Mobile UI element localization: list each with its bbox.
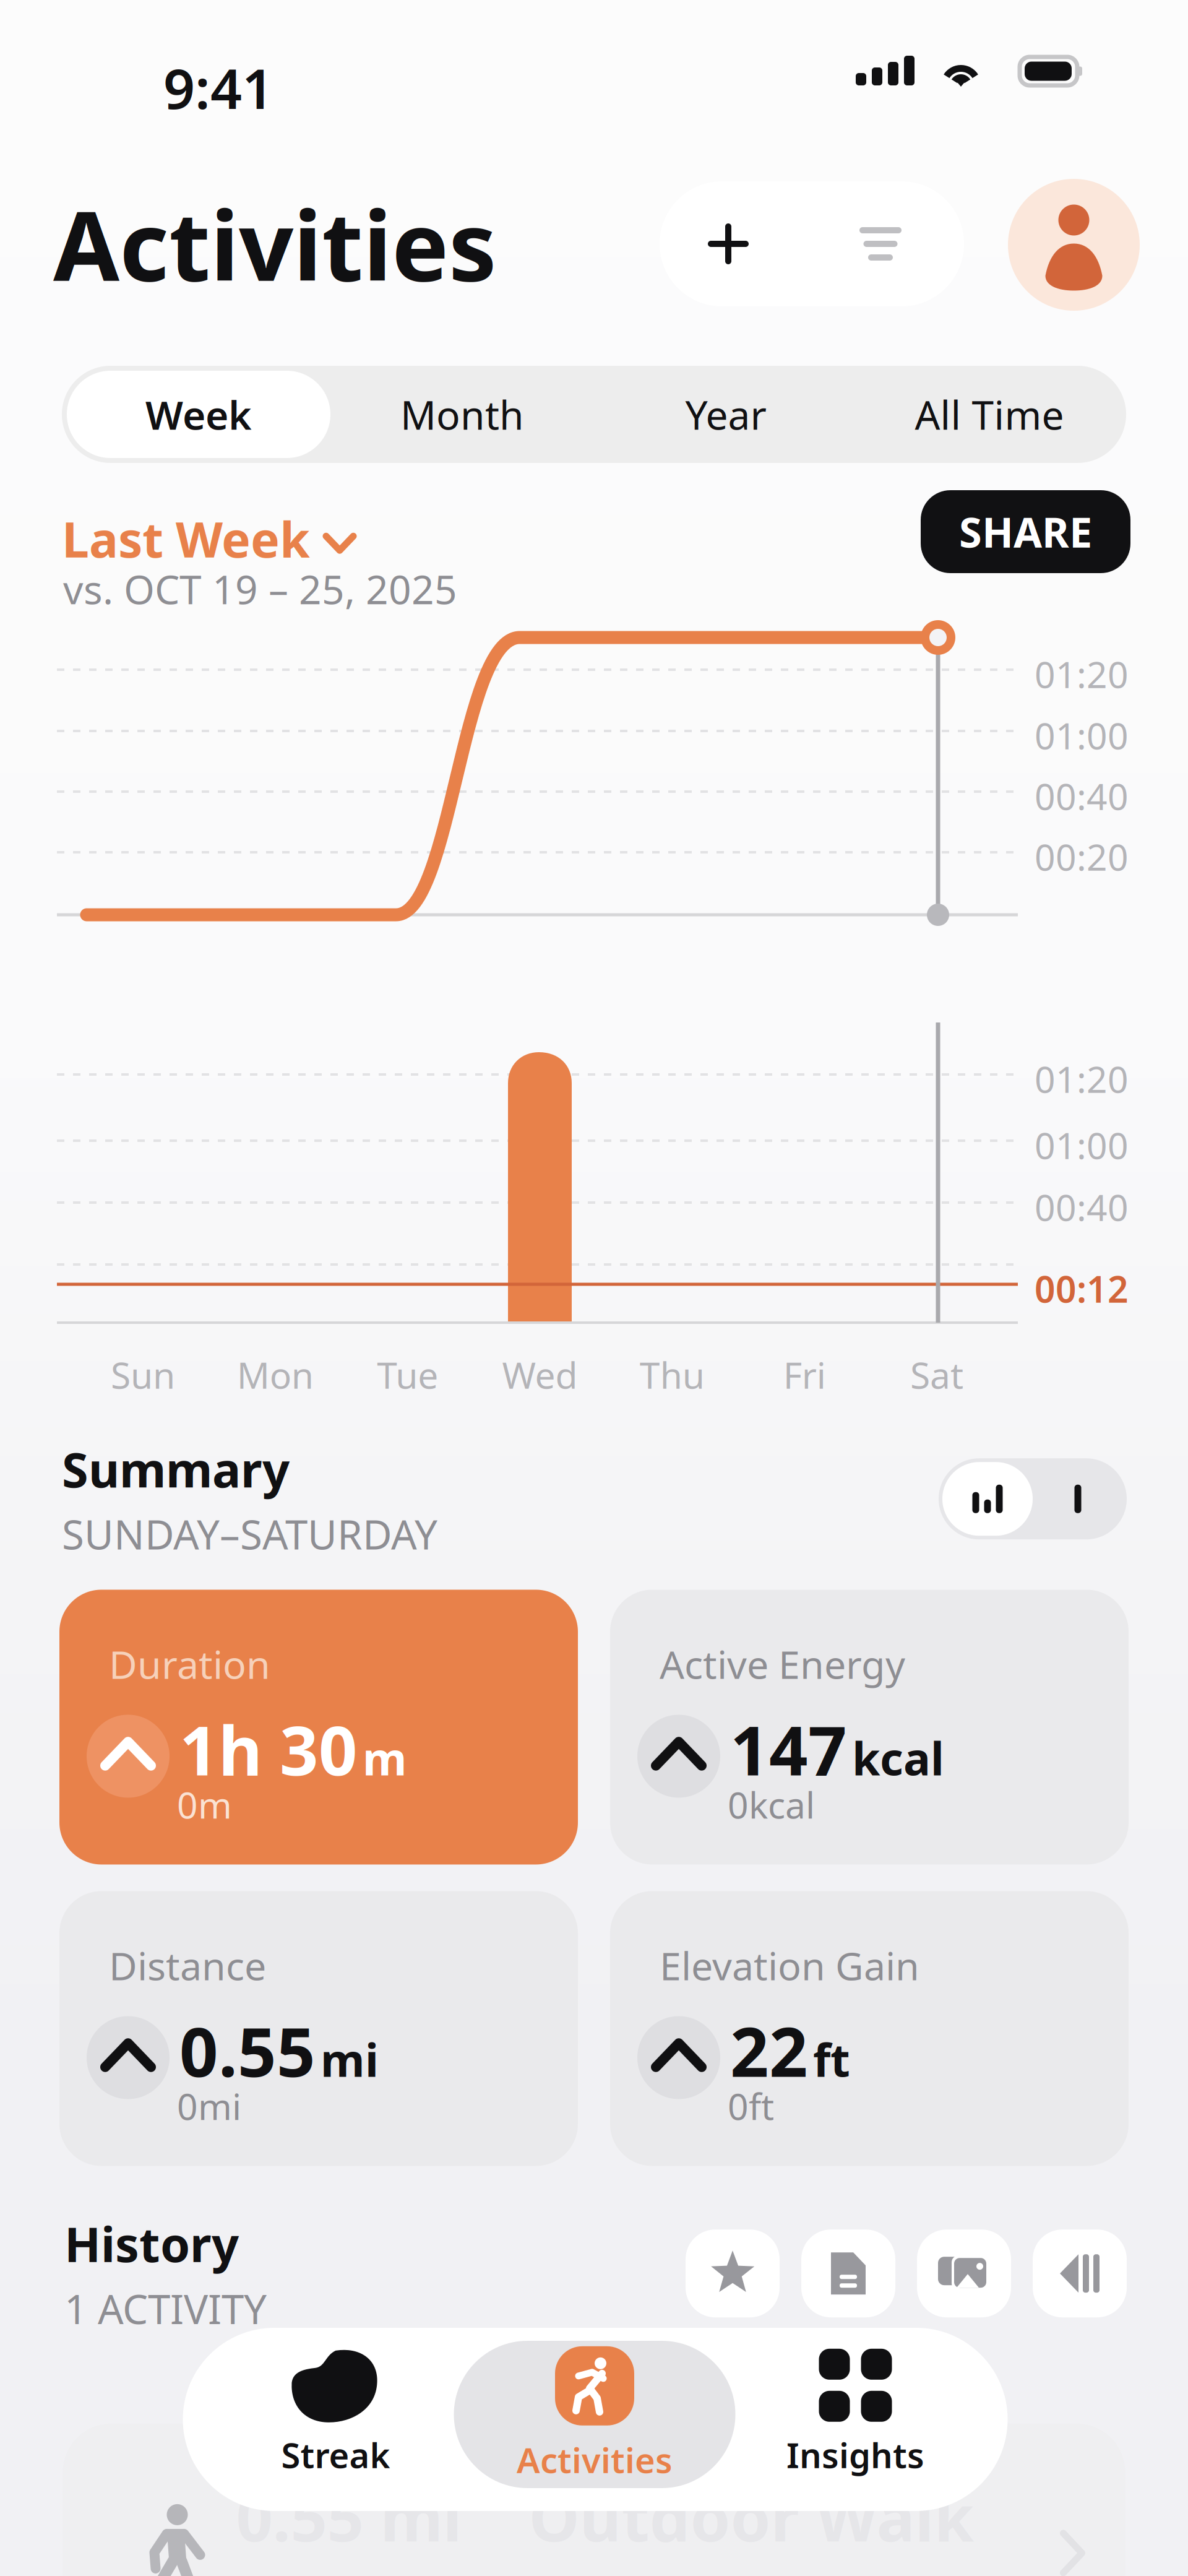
- button[interactable]: Filter: [797, 181, 964, 306]
- staticText: 0ft: [728, 2082, 774, 2130]
- staticText: vs. OCT 19 – 25, 2025: [63, 563, 457, 615]
- staticText: mi: [321, 2029, 379, 2089]
- staticText: kcal: [852, 1728, 944, 1788]
- staticText: SHARE: [959, 504, 1092, 559]
- button[interactable]: Elevation Gain: [610, 1891, 1129, 2166]
- staticText: 22: [730, 2006, 808, 2096]
- button[interactable]: Single bar: [1033, 1462, 1123, 1536]
- staticText: Summary: [62, 1437, 290, 1501]
- button[interactable]: Year: [594, 371, 858, 458]
- staticText: Month: [400, 388, 524, 441]
- staticText: Week: [145, 388, 252, 441]
- staticText: 147: [730, 1704, 847, 1794]
- button[interactable]: Week: [67, 371, 330, 458]
- staticText: Fri: [783, 1351, 826, 1399]
- button[interactable]: Profile: [1008, 179, 1140, 311]
- staticText: ft: [813, 2029, 850, 2089]
- staticText: 0.55 mi Outdoor Walk: [236, 2474, 974, 2559]
- staticText: Sun: [111, 1351, 175, 1399]
- button[interactable]: Streak: [206, 2341, 466, 2488]
- staticText: Sat: [910, 1351, 963, 1399]
- staticText: 0kcal: [728, 1780, 815, 1829]
- button[interactable]: Duration: [59, 1590, 578, 1865]
- button[interactable]: All Time: [858, 371, 1121, 458]
- staticText: Wed: [502, 1351, 578, 1399]
- staticText: Thu: [640, 1351, 705, 1399]
- staticText: m: [363, 1728, 407, 1788]
- staticText: Streak: [281, 2432, 390, 2478]
- staticText: 01:20: [1035, 1055, 1129, 1103]
- staticText: Insights: [786, 2432, 924, 2478]
- button[interactable]: Add activity: [660, 181, 797, 306]
- staticText: 0mi: [177, 2082, 241, 2130]
- staticText: 00:20: [1035, 832, 1129, 881]
- staticText: 01:00: [1035, 711, 1129, 759]
- staticText: Duration: [109, 1638, 270, 1690]
- button[interactable]: Bar chart: [942, 1462, 1033, 1536]
- staticText: 01:00: [1035, 1121, 1129, 1169]
- button[interactable]: SHARE: [921, 490, 1130, 573]
- button[interactable]: Favorites: [686, 2230, 780, 2317]
- staticText: Distance: [109, 1939, 266, 1991]
- staticText: Activities: [517, 2437, 673, 2483]
- staticText: 00:40: [1035, 772, 1129, 820]
- staticText: Mon: [237, 1351, 314, 1399]
- staticText: History: [64, 2212, 239, 2275]
- button[interactable]: Last Week: [62, 506, 353, 571]
- staticText: 1 ACTIVITY: [64, 2281, 267, 2335]
- staticText: Year: [685, 388, 766, 441]
- button[interactable]: Sort: [1033, 2230, 1127, 2317]
- staticText: SUNDAY–SATURDAY: [62, 1507, 437, 1561]
- button[interactable]: 0.55 mi Outdoor Walk: [63, 2424, 1125, 2576]
- button[interactable]: Activities: [454, 2341, 735, 2488]
- staticText: 1h 30: [179, 1704, 358, 1794]
- staticText: Tue: [377, 1351, 438, 1399]
- staticText: Activities: [53, 180, 497, 307]
- button[interactable]: Insights: [725, 2341, 985, 2488]
- button[interactable]: Month: [330, 371, 594, 458]
- staticText: All Time: [915, 388, 1064, 441]
- staticText: 0.55: [179, 2006, 316, 2096]
- button[interactable]: Photos: [917, 2230, 1011, 2317]
- staticText: Active Energy: [660, 1638, 905, 1690]
- staticText: Elevation Gain: [660, 1939, 919, 1991]
- button[interactable]: Notes: [801, 2230, 895, 2317]
- button[interactable]: Distance: [59, 1891, 578, 2166]
- button[interactable]: Active Energy: [610, 1590, 1129, 1865]
- staticText: 00:40: [1035, 1183, 1129, 1231]
- staticText: 00:12: [1035, 1264, 1129, 1313]
- staticText: Last Week: [62, 506, 310, 571]
- staticText: 0m: [177, 1780, 232, 1829]
- staticText: 9:41: [163, 51, 273, 124]
- staticText: 01:20: [1035, 650, 1129, 698]
